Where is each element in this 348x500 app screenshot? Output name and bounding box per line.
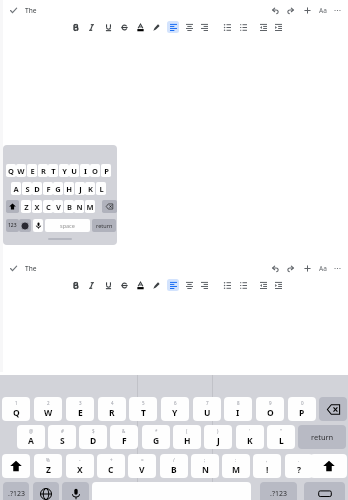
button[interactable]: O — [90, 164, 100, 177]
button[interactable]: 8 — [224, 397, 252, 421]
button[interactable]: Decrease indent — [256, 278, 270, 292]
button[interactable]: / — [160, 454, 188, 478]
button[interactable]: 123 — [6, 219, 19, 232]
button[interactable]: Z — [21, 200, 31, 213]
button[interactable]: Backspace — [319, 397, 347, 421]
button[interactable]: $ — [79, 425, 107, 449]
button[interactable]: Text style — [315, 261, 330, 276]
button[interactable]: = — [128, 454, 156, 478]
button[interactable]: Bulleted list — [220, 20, 234, 34]
button[interactable]: A — [11, 182, 21, 195]
button[interactable]: 5 — [129, 397, 157, 421]
button[interactable]: " — [267, 425, 295, 449]
button[interactable]: Shift — [2, 454, 30, 478]
button[interactable]: Language — [19, 219, 31, 232]
button[interactable]: Decrease indent — [256, 20, 270, 34]
button[interactable]: 4 — [98, 397, 126, 421]
button[interactable]: Done — [7, 4, 19, 16]
button[interactable]: Align center — [182, 278, 196, 292]
button[interactable]: 1 — [2, 397, 30, 421]
button[interactable]: Numbered list — [236, 278, 250, 292]
button[interactable]: R — [38, 164, 48, 177]
button[interactable]: I — [80, 164, 90, 177]
button[interactable]: Text style — [315, 3, 330, 18]
button[interactable]: return — [92, 219, 116, 232]
button[interactable]: Voice input — [62, 482, 89, 500]
button[interactable]: Bold — [68, 278, 82, 292]
button[interactable]: U — [69, 164, 79, 177]
button[interactable]: More options — [330, 3, 345, 18]
button[interactable]: Increase indent — [271, 278, 285, 292]
button[interactable]: Align center — [182, 20, 196, 34]
button[interactable]: Highlight — [149, 278, 163, 292]
button[interactable]: M — [85, 200, 95, 213]
button[interactable]: S — [22, 182, 32, 195]
button[interactable]: Increase indent — [271, 20, 285, 34]
button[interactable]: space — [45, 219, 90, 232]
button[interactable]: * — [142, 425, 170, 449]
button[interactable]: Shift — [6, 200, 19, 213]
button[interactable]: : — [222, 454, 250, 478]
button[interactable]: W — [16, 164, 26, 177]
button[interactable]: - — [66, 454, 94, 478]
button[interactable]: E — [27, 164, 37, 177]
button[interactable]: # — [48, 425, 76, 449]
button[interactable]: Q — [6, 164, 16, 177]
button[interactable]: return — [298, 425, 346, 449]
button[interactable]: @ — [17, 425, 45, 449]
button[interactable]: Redo — [283, 261, 298, 276]
button[interactable]: Italic — [84, 278, 98, 292]
button[interactable]: More options — [330, 261, 345, 276]
button[interactable]: Italic — [84, 20, 98, 34]
button[interactable]: J — [75, 182, 85, 195]
button[interactable]: T — [48, 164, 58, 177]
button[interactable]: 0 — [288, 397, 316, 421]
button[interactable]: 9 — [256, 397, 284, 421]
button[interactable]: D — [32, 182, 42, 195]
button[interactable]: 7 — [193, 397, 221, 421]
button[interactable]: G — [53, 182, 63, 195]
button[interactable]: + — [97, 454, 125, 478]
button[interactable]: F — [43, 182, 53, 195]
button[interactable]: 2 — [34, 397, 62, 421]
button[interactable]: B — [64, 200, 74, 213]
button[interactable]: Shift — [310, 454, 347, 478]
button[interactable]: 3 — [66, 397, 94, 421]
button[interactable]: L — [96, 182, 106, 195]
button[interactable]: Undo — [268, 261, 283, 276]
button[interactable]: K — [85, 182, 95, 195]
button[interactable]: Bulleted list — [220, 278, 234, 292]
button[interactable]: ' — [236, 425, 264, 449]
button[interactable]: Undo — [268, 3, 283, 18]
button[interactable]: ( — [173, 425, 201, 449]
button[interactable]: ) — [204, 425, 232, 449]
button[interactable]: .?123 — [3, 482, 29, 500]
button[interactable]: X — [32, 200, 42, 213]
button[interactable]: Add — [300, 261, 315, 276]
button[interactable]: Align right — [197, 278, 211, 292]
button[interactable]: Add — [300, 3, 315, 18]
button[interactable]: Language — [33, 482, 59, 500]
button[interactable]: Done — [7, 262, 19, 274]
button[interactable]: 6 — [161, 397, 189, 421]
button[interactable]: .?123 — [260, 482, 297, 500]
button[interactable]: Align left — [166, 278, 180, 292]
button[interactable]: Underline — [101, 20, 115, 34]
button[interactable]: Align right — [197, 20, 211, 34]
button[interactable]: Numbered list — [236, 20, 250, 34]
button[interactable]: Strikethrough — [117, 20, 131, 34]
button[interactable]: P — [101, 164, 111, 177]
button[interactable]: Text color — [133, 20, 147, 34]
button[interactable]: N — [74, 200, 84, 213]
button[interactable]: ; — [191, 454, 219, 478]
button[interactable]: Strikethrough — [117, 278, 131, 292]
button[interactable]: Text color — [133, 278, 147, 292]
button[interactable]: Hide keyboard — [304, 482, 345, 500]
button[interactable]: Redo — [283, 3, 298, 18]
button[interactable]: & — [110, 425, 138, 449]
button[interactable]: Backspace — [102, 200, 117, 213]
button[interactable]: . — [285, 454, 313, 478]
button[interactable]: Y — [59, 164, 69, 177]
button[interactable]: Voice input — [33, 219, 43, 232]
button[interactable]: Align left — [166, 20, 180, 34]
